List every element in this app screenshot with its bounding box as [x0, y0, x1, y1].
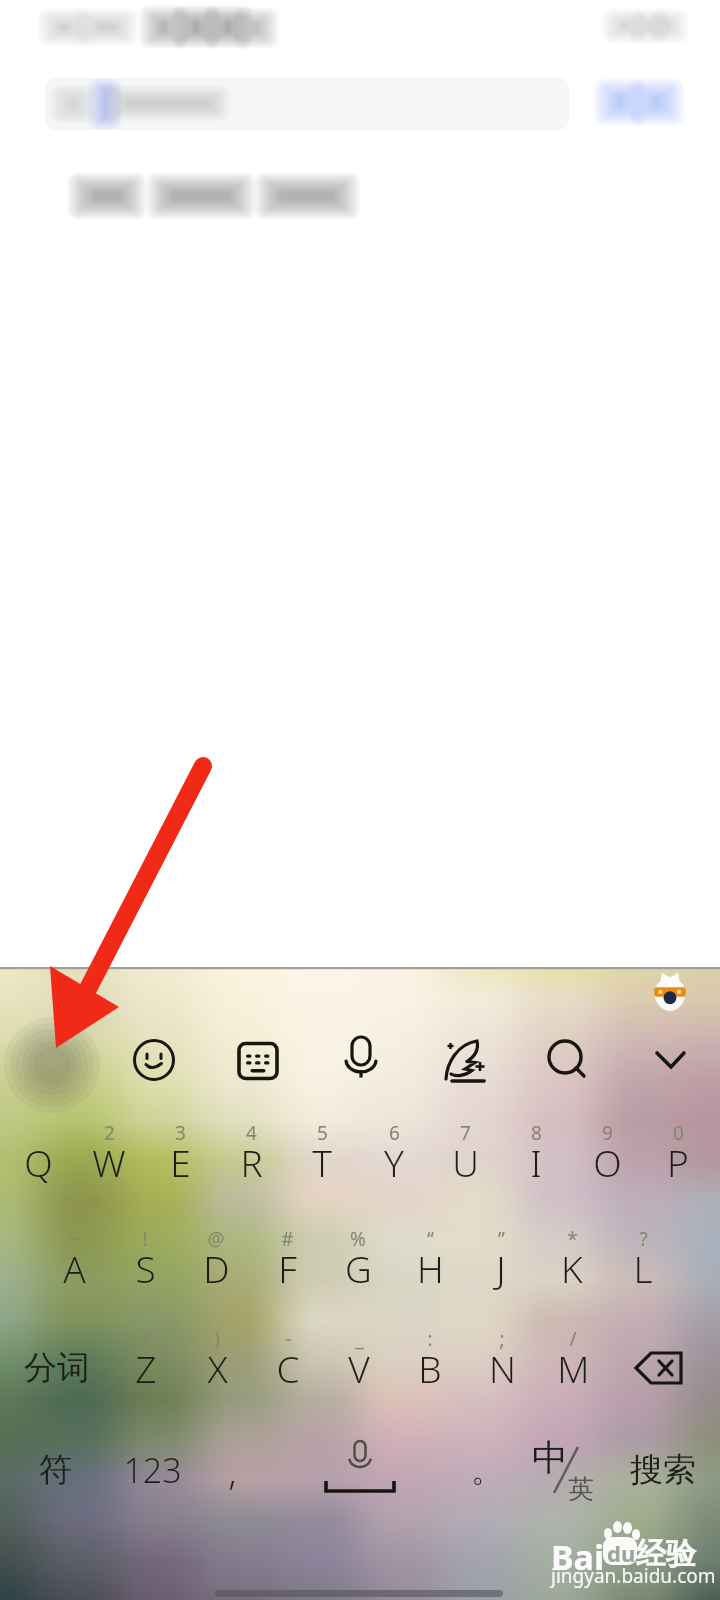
button[interactable]: E — [144, 1129, 216, 1195]
staticText: D — [203, 1243, 230, 1293]
staticText: * — [567, 1226, 578, 1252]
staticText: J — [496, 1243, 506, 1293]
button[interactable]: W — [73, 1129, 145, 1195]
staticText: U — [452, 1137, 479, 1187]
button[interactable]: K — [536, 1235, 608, 1301]
staticText: F — [278, 1243, 297, 1293]
button[interactable]: M — [537, 1335, 609, 1401]
button[interactable]: P — [642, 1129, 714, 1195]
staticText: 3 — [175, 1120, 186, 1146]
staticText: 123 — [123, 1447, 182, 1493]
staticText: / — [569, 1326, 577, 1352]
staticText: ! — [142, 1226, 148, 1252]
staticText: Z — [135, 1343, 157, 1393]
staticText: , — [228, 1445, 237, 1495]
button[interactable]: 。 — [451, 1437, 523, 1503]
staticText: @ — [207, 1226, 225, 1252]
button[interactable]: L — [607, 1235, 679, 1301]
button[interactable]: Space — [300, 1435, 420, 1509]
button[interactable]: 符 — [19, 1437, 91, 1503]
staticText: 4 — [246, 1120, 257, 1146]
button[interactable]: A — [38, 1235, 110, 1301]
button[interactable]: N — [466, 1335, 538, 1401]
button[interactable]: B — [394, 1335, 466, 1401]
staticText: ( — [143, 1326, 149, 1352]
button[interactable]: , — [196, 1437, 268, 1503]
button[interactable]: Chinese English toggle — [518, 1429, 614, 1513]
staticText: 搜索 — [630, 1449, 696, 1491]
staticText: Y — [384, 1137, 404, 1187]
staticText: “ — [427, 1226, 434, 1252]
button[interactable]: R — [215, 1129, 287, 1195]
staticText: 分词 — [24, 1347, 90, 1389]
staticText: T — [312, 1137, 332, 1187]
button[interactable]: Keyboard layout — [224, 1027, 292, 1095]
staticText: - — [285, 1326, 292, 1352]
staticText: 9 — [602, 1120, 613, 1146]
staticText: ? — [639, 1226, 648, 1252]
staticText: I — [530, 1137, 542, 1187]
staticText: 5 — [317, 1120, 328, 1146]
staticText: M — [557, 1343, 590, 1393]
button[interactable]: F — [251, 1235, 323, 1301]
button[interactable]: V — [323, 1335, 395, 1401]
button[interactable]: Z — [110, 1335, 182, 1401]
button[interactable]: O — [571, 1129, 643, 1195]
button[interactable]: 123 — [116, 1437, 188, 1503]
button[interactable]: T — [286, 1129, 358, 1195]
button[interactable]: Y — [358, 1129, 430, 1195]
staticText: ; — [499, 1326, 505, 1352]
staticText: R — [240, 1137, 263, 1187]
staticText: Q — [24, 1137, 53, 1187]
staticText: O — [593, 1137, 622, 1187]
staticText: A — [63, 1243, 86, 1293]
button[interactable]: Emoji — [120, 1026, 188, 1094]
button[interactable]: Q — [2, 1129, 74, 1195]
staticText: E — [170, 1137, 191, 1187]
button[interactable]: S — [109, 1235, 181, 1301]
staticText: ” — [498, 1226, 505, 1252]
staticText: 经验 — [636, 1535, 696, 1573]
staticText: du — [607, 1538, 636, 1566]
button[interactable]: Search — [532, 1025, 600, 1093]
staticText: : — [427, 1326, 433, 1352]
button[interactable]: X — [181, 1335, 253, 1401]
button[interactable]: J — [465, 1235, 537, 1301]
button[interactable]: Hide keyboard — [637, 1026, 705, 1094]
button[interactable]: Handwriting — [430, 1026, 498, 1094]
staticText: jingyan.baidu.com — [551, 1563, 716, 1589]
button[interactable]: Backspace — [618, 1336, 702, 1400]
button[interactable]: I — [500, 1129, 572, 1195]
staticText: G — [345, 1243, 372, 1293]
staticText: # — [281, 1226, 294, 1252]
staticText: 0 — [673, 1120, 684, 1146]
button[interactable]: D — [180, 1235, 252, 1301]
staticText: H — [417, 1243, 444, 1293]
staticText: C — [276, 1343, 300, 1393]
staticText: P — [667, 1137, 689, 1187]
button[interactable]: U — [429, 1129, 501, 1195]
button[interactable]: 分词 — [21, 1335, 93, 1401]
staticText: W — [92, 1137, 126, 1187]
staticText: 。 — [471, 1450, 503, 1490]
staticText: ~ — [69, 1226, 80, 1252]
button[interactable]: G — [322, 1235, 394, 1301]
button[interactable]: Baidu assistant — [646, 967, 694, 1015]
staticText: 英 — [568, 1473, 594, 1506]
staticText: 8 — [531, 1120, 542, 1146]
button[interactable]: Voice input — [327, 1023, 395, 1091]
staticText: S — [135, 1243, 156, 1293]
staticText: B — [418, 1343, 442, 1393]
button[interactable]: C — [252, 1335, 324, 1401]
staticText: N — [489, 1343, 516, 1393]
button[interactable]: H — [394, 1235, 466, 1301]
staticText: K — [561, 1243, 583, 1293]
staticText: % — [350, 1226, 366, 1252]
button[interactable] — [0, 0, 720, 300]
staticText: ) — [214, 1326, 220, 1352]
staticText: 7 — [460, 1120, 471, 1146]
staticText: Bai — [551, 1534, 605, 1580]
button[interactable]: 搜索 — [627, 1437, 699, 1503]
staticText: V — [348, 1343, 370, 1393]
staticText: L — [633, 1243, 653, 1293]
